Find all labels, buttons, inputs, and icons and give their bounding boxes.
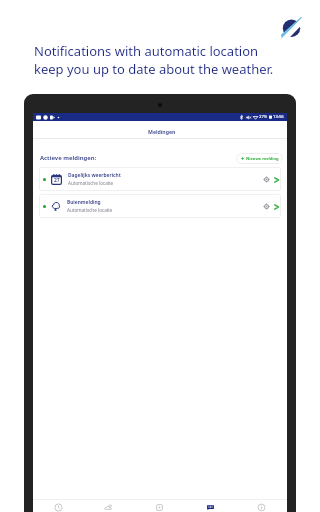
button[interactable]: 27 (39, 167, 281, 191)
staticText: keep you up to date about the weather. (34, 60, 274, 78)
staticText: Automatische locatie (67, 207, 113, 213)
button[interactable]: Meldingen (33, 121, 287, 138)
staticText: Buienmelding (67, 199, 101, 206)
button[interactable]: Notifications (185, 500, 236, 512)
button[interactable]: Weather (83, 500, 134, 512)
staticText: Actieve meldingen: (40, 154, 97, 162)
button[interactable]: Automatic location (261, 201, 272, 212)
button[interactable]: Open (272, 174, 281, 185)
button[interactable]: Automatic location (261, 174, 272, 185)
button[interactable]: Info (236, 500, 287, 512)
staticText: 13:56 (273, 114, 284, 120)
button[interactable]: History (33, 500, 83, 512)
button[interactable]: Nieuwe melding (236, 153, 283, 164)
staticText: Meldingen (148, 128, 176, 135)
staticText: Dagelijks weerbericht (68, 172, 121, 179)
staticText: Nieuwe melding (246, 156, 279, 161)
button[interactable]: Buienmelding (39, 194, 281, 218)
staticText: Notifications with automatic location (34, 42, 259, 60)
staticText: Automatische locatie (68, 180, 114, 186)
button[interactable]: Radar (134, 500, 185, 512)
staticText: 27 (54, 177, 60, 184)
button[interactable]: Open (272, 201, 281, 212)
staticText: 27% (259, 114, 268, 120)
button[interactable]: Logo (281, 18, 302, 39)
